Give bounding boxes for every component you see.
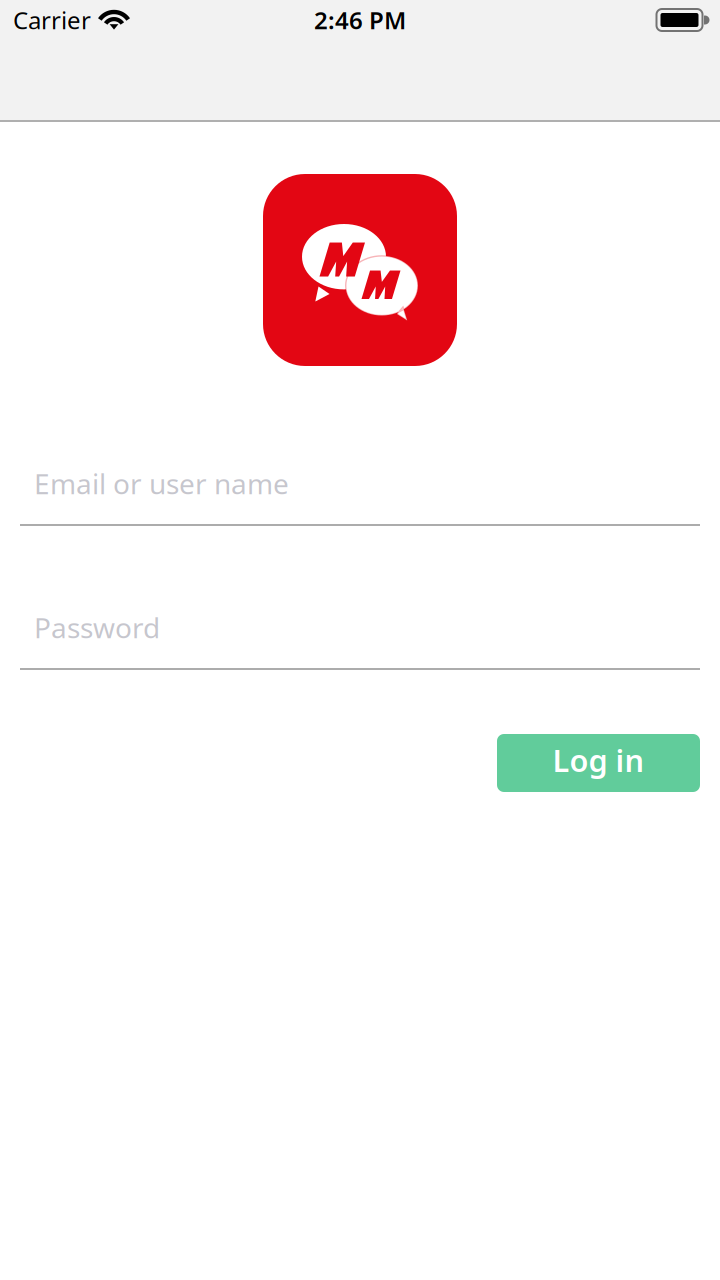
staticText: Carrier	[13, 4, 91, 36]
staticText: Log in	[552, 740, 644, 780]
staticText: 2:46 PM	[314, 4, 406, 36]
button[interactable]: Password	[0, 613, 720, 670]
button[interactable]: Email or user name	[0, 469, 720, 526]
staticText: Email or user name	[34, 465, 289, 502]
button[interactable]: Log in	[497, 734, 700, 792]
staticText: Password	[34, 609, 160, 646]
